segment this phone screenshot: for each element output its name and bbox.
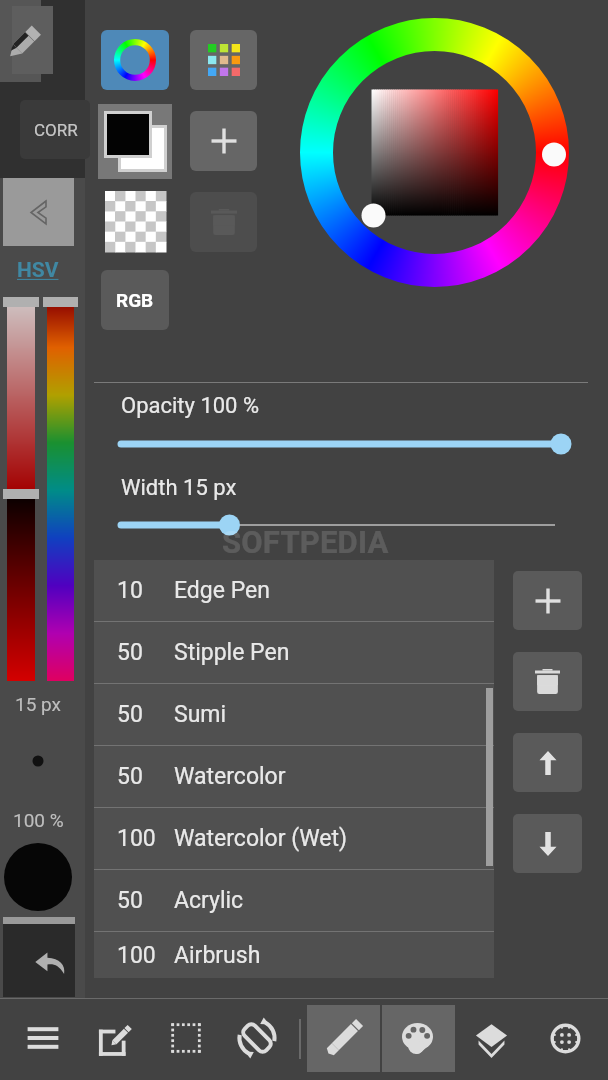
staticText: Sumi bbox=[174, 701, 227, 728]
staticText: HSV bbox=[17, 258, 59, 283]
button[interactable]: 100 bbox=[94, 808, 494, 869]
staticText: 50 bbox=[117, 701, 143, 728]
button[interactable]: Edit bbox=[78, 1004, 148, 1072]
button[interactable]: Slider bbox=[121, 431, 561, 457]
staticText: Watercolor (Wet) bbox=[174, 825, 348, 852]
button[interactable]: RGB mode bbox=[101, 270, 169, 330]
staticText: Airbrush bbox=[174, 942, 261, 969]
staticText: Stipple Pen bbox=[174, 639, 290, 666]
button[interactable]: Palette bbox=[190, 30, 257, 90]
button[interactable]: Rotate bbox=[222, 1004, 292, 1072]
button[interactable]: 10 bbox=[94, 560, 494, 621]
button[interactable]: Select bbox=[151, 1004, 221, 1072]
button[interactable]: Current colors bbox=[98, 104, 172, 179]
staticText: CORR bbox=[34, 120, 78, 140]
button[interactable]: Delete brush bbox=[513, 652, 582, 711]
staticText: Width 15 px bbox=[121, 475, 237, 501]
button[interactable]: Transparent bbox=[105, 191, 166, 252]
button[interactable]: Color wheel bbox=[101, 30, 169, 90]
staticText: 50 bbox=[117, 639, 143, 666]
button[interactable]: Pencil tool bbox=[0, 0, 41, 82]
staticText: 10 bbox=[117, 577, 143, 604]
staticText: 100 % bbox=[13, 809, 64, 831]
button[interactable]: Texture bbox=[530, 1004, 600, 1072]
button[interactable]: 50 bbox=[94, 684, 494, 745]
staticText: RGB bbox=[116, 289, 154, 311]
button[interactable]: 50 bbox=[94, 746, 494, 807]
button[interactable]: Move up bbox=[513, 733, 582, 792]
button[interactable]: CORR bbox=[20, 100, 90, 159]
button[interactable]: 50 bbox=[94, 622, 494, 683]
staticText: Acrylic bbox=[174, 887, 244, 914]
staticText: 100 bbox=[117, 942, 156, 969]
button[interactable]: HSV bbox=[0, 252, 76, 288]
button[interactable]: Palette bbox=[382, 1004, 452, 1072]
button[interactable]: Slider bbox=[121, 512, 555, 538]
button[interactable]: Layers bbox=[456, 1004, 526, 1072]
staticText: 15 px bbox=[15, 693, 62, 715]
button[interactable]: 50 bbox=[94, 870, 494, 931]
button[interactable]: Collapse panel bbox=[3, 178, 74, 246]
staticText: Watercolor bbox=[174, 763, 286, 790]
button[interactable]: 100 bbox=[94, 932, 494, 978]
staticText: 50 bbox=[117, 763, 143, 790]
button[interactable]: Add brush bbox=[513, 571, 582, 630]
button[interactable]: Undo bbox=[3, 924, 75, 997]
button[interactable]: Delete color bbox=[190, 192, 257, 252]
staticText: Edge Pen bbox=[174, 577, 270, 604]
button[interactable]: Add color bbox=[190, 111, 257, 171]
staticText: 100 bbox=[117, 825, 156, 852]
staticText: SOFTPEDIA bbox=[222, 524, 389, 560]
button[interactable]: Move down bbox=[513, 814, 582, 873]
staticText: 50 bbox=[117, 887, 143, 914]
button[interactable]: Draw bbox=[309, 1004, 379, 1072]
staticText: Opacity 100 % bbox=[121, 393, 260, 419]
button[interactable]: Menu bbox=[8, 1004, 78, 1072]
